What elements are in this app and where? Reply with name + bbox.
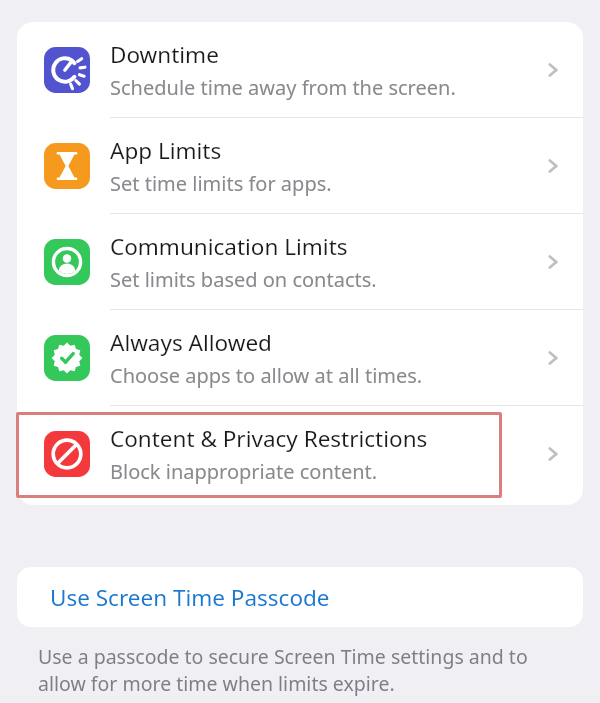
staticText: Use Screen Time Passcode [50, 582, 330, 613]
staticText: Content & Privacy Restrictions [110, 423, 428, 454]
button[interactable]: Downtime [17, 22, 583, 117]
button[interactable]: Always Allowed [17, 310, 583, 405]
staticText: Choose apps to allow at all times. [110, 362, 423, 389]
button[interactable]: Use Screen Time Passcode [17, 567, 583, 627]
staticText: Set time limits for apps. [110, 170, 332, 197]
staticText: Downtime [110, 39, 219, 70]
button[interactable]: Communication Limits [17, 214, 583, 309]
staticText: Set limits based on contacts. [110, 266, 377, 293]
button[interactable]: Content & Privacy Restrictions [17, 406, 583, 501]
staticText: Block inappropriate content. [110, 458, 378, 485]
staticText: Always Allowed [110, 327, 272, 358]
staticText: App Limits [110, 135, 222, 166]
staticText: Schedule time away from the screen. [110, 74, 456, 101]
staticText: Use a passcode to secure Screen Time set… [38, 643, 558, 697]
staticText: Communication Limits [110, 231, 348, 262]
button[interactable]: App Limits [17, 118, 583, 213]
